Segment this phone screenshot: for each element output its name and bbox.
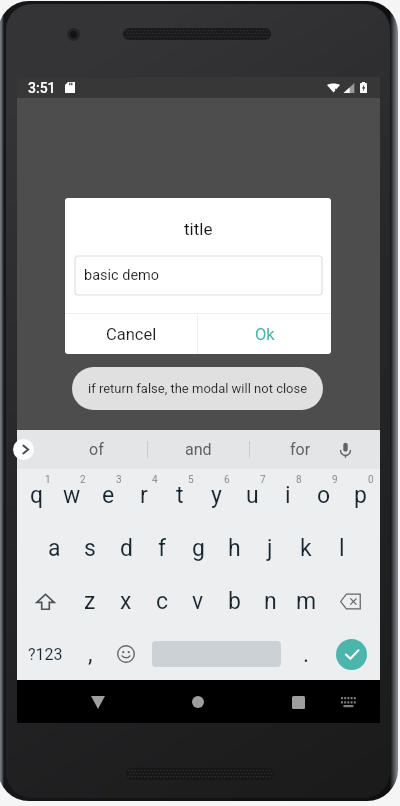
staticText: 4 <box>152 474 158 486</box>
staticText: for <box>290 440 311 459</box>
staticText: l <box>339 535 345 562</box>
staticText: ?123 <box>28 645 63 664</box>
staticText: h <box>228 535 241 562</box>
staticText: basic demo <box>84 267 160 284</box>
button[interactable]: b <box>216 575 252 628</box>
staticText: if return false, the modal will not clos… <box>88 381 308 396</box>
button[interactable]: Voice input <box>335 440 355 460</box>
staticText: i <box>285 482 291 509</box>
button[interactable]: f <box>144 522 180 575</box>
staticText: s <box>84 535 96 562</box>
button[interactable]: j <box>252 522 288 575</box>
button[interactable]: e <box>90 469 126 522</box>
button[interactable]: for <box>250 430 351 469</box>
staticText: 3 <box>116 474 122 486</box>
button[interactable]: m <box>288 575 324 628</box>
staticText: Ok <box>255 325 275 344</box>
button[interactable]: , <box>72 628 108 680</box>
staticText: c <box>156 588 169 615</box>
button[interactable]: p <box>342 469 378 522</box>
button[interactable]: c <box>144 575 180 628</box>
button[interactable]: y <box>198 469 234 522</box>
staticText: r <box>140 482 148 509</box>
staticText: j <box>267 535 273 562</box>
button[interactable]: a <box>36 522 72 575</box>
button[interactable]: u <box>234 469 270 522</box>
staticText: 3:51 <box>28 80 56 96</box>
staticText: o <box>317 482 331 509</box>
staticText: 1 <box>45 474 51 486</box>
button[interactable]: of <box>45 430 147 469</box>
staticText: x <box>120 588 132 615</box>
button[interactable]: v <box>180 575 216 628</box>
button[interactable]: Backspace <box>324 575 378 628</box>
button[interactable]: Emoji <box>108 628 144 680</box>
staticText: g <box>192 535 205 562</box>
button[interactable]: . <box>288 628 324 680</box>
staticText: z <box>84 588 96 615</box>
staticText: of <box>89 440 104 459</box>
button[interactable]: x <box>108 575 144 628</box>
staticText: 8 <box>296 474 302 486</box>
button[interactable]: l <box>324 522 360 575</box>
staticText: w <box>63 482 81 509</box>
button[interactable]: s <box>72 522 108 575</box>
button[interactable]: ?123 <box>19 628 72 680</box>
staticText: n <box>264 588 277 615</box>
button[interactable]: i <box>270 469 306 522</box>
staticText: 0 <box>368 474 374 486</box>
staticText: m <box>296 588 317 615</box>
staticText: title <box>184 219 213 239</box>
staticText: 6 <box>224 474 230 486</box>
staticText: , <box>88 641 93 668</box>
staticText: d <box>120 535 133 562</box>
button[interactable]: Shift <box>19 575 72 628</box>
staticText: y <box>211 482 222 509</box>
staticText: Cancel <box>106 325 157 344</box>
staticText: and <box>185 440 212 459</box>
staticText: 2 <box>80 474 86 486</box>
button[interactable]: g <box>180 522 216 575</box>
staticText: b <box>228 588 241 615</box>
button[interactable]: w <box>54 469 90 522</box>
button[interactable]: h <box>216 522 252 575</box>
button[interactable]: r <box>126 469 162 522</box>
button[interactable]: n <box>252 575 288 628</box>
button[interactable]: Home <box>181 685 215 719</box>
staticText: 5 <box>188 474 194 486</box>
button[interactable]: o <box>306 469 342 522</box>
button[interactable]: Switch keyboard <box>334 687 364 717</box>
button[interactable]: Space <box>144 628 288 680</box>
button[interactable]: More suggestions <box>13 439 34 460</box>
button[interactable]: Recents <box>281 685 315 719</box>
staticText: u <box>246 482 259 509</box>
button[interactable]: t <box>162 469 198 522</box>
button[interactable]: Back <box>81 685 115 719</box>
staticText: t <box>176 482 184 509</box>
staticText: q <box>30 482 44 509</box>
staticText: k <box>300 535 312 562</box>
staticText: . <box>303 641 310 668</box>
staticText: f <box>158 535 166 562</box>
staticText: p <box>354 482 367 509</box>
button[interactable]: Enter <box>324 628 378 680</box>
button[interactable]: Cancel <box>65 314 197 354</box>
button[interactable]: Ok <box>198 314 331 354</box>
button[interactable]: d <box>108 522 144 575</box>
button[interactable]: k <box>288 522 324 575</box>
button[interactable]: z <box>72 575 108 628</box>
button[interactable]: q <box>19 469 54 522</box>
staticText: 7 <box>260 474 266 486</box>
staticText: a <box>48 535 61 562</box>
staticText: e <box>102 482 115 509</box>
button[interactable]: and <box>148 430 249 469</box>
staticText: v <box>192 588 204 615</box>
staticText: 9 <box>332 474 338 486</box>
